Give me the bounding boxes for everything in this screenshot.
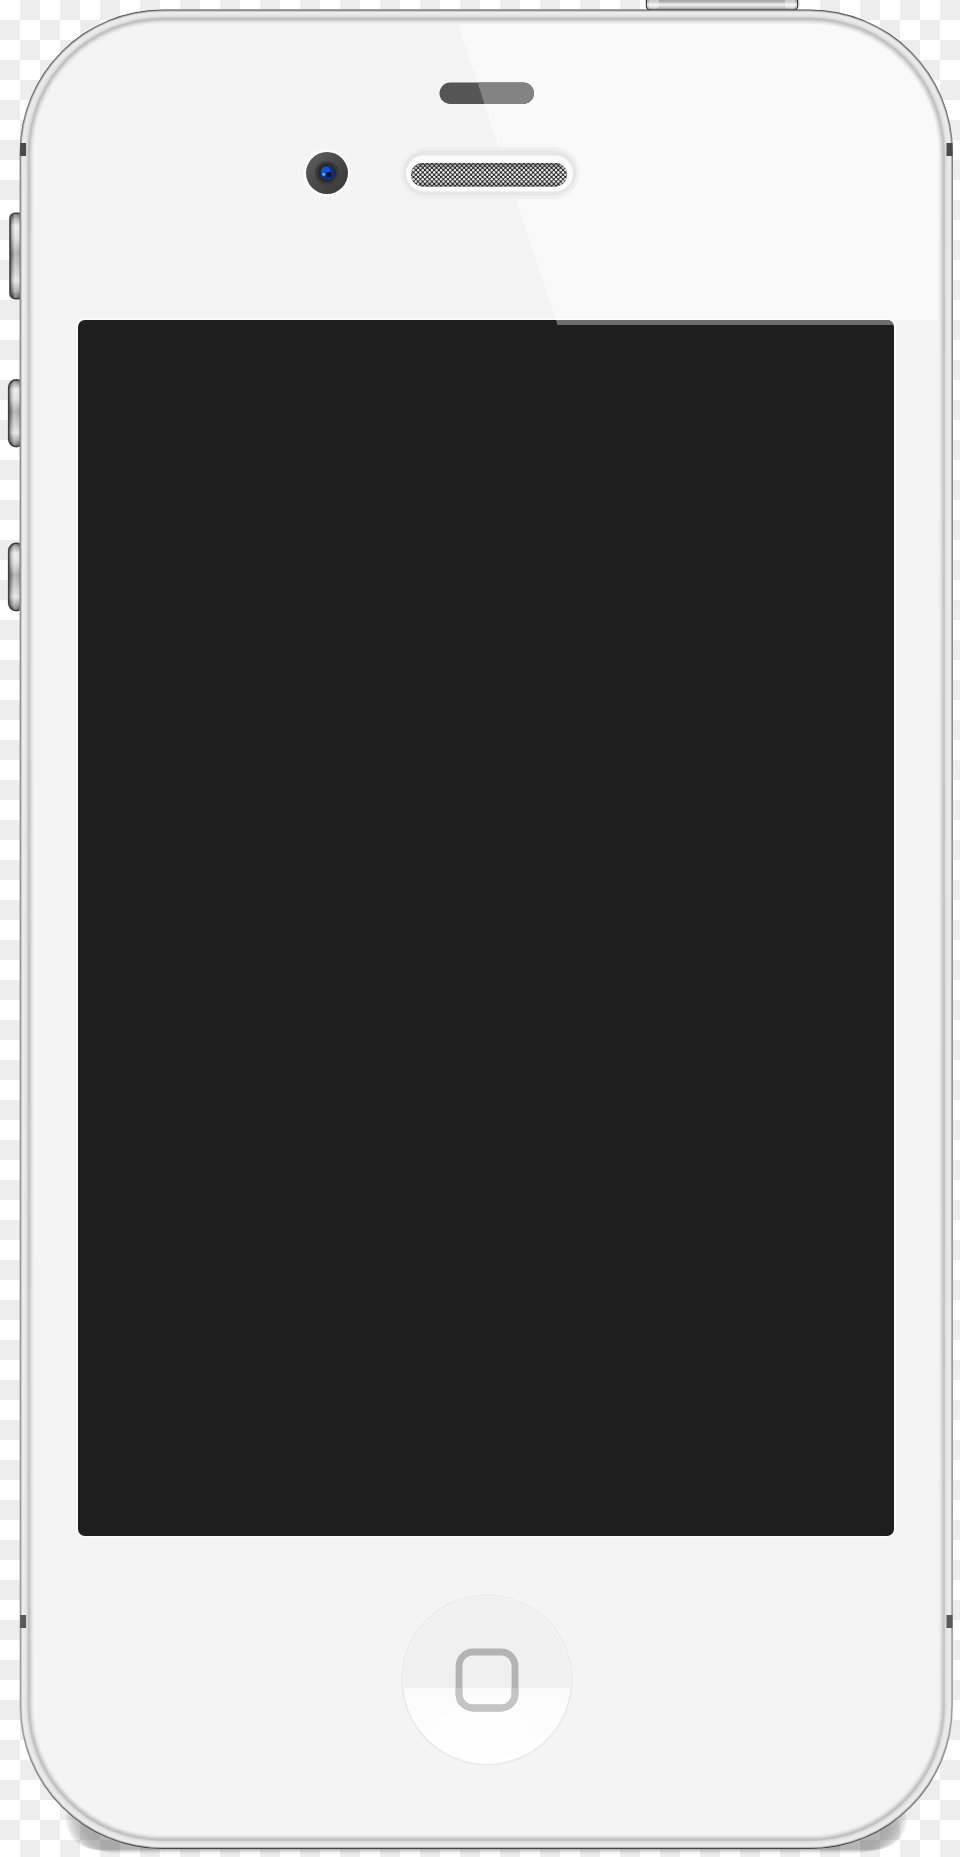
button[interactable]: Home button	[402, 1595, 572, 1765]
button[interactable]: Volume up	[4, 379, 28, 448]
button[interactable]: Volume down	[4, 542, 28, 612]
button[interactable]: Silent / ring switch	[4, 212, 28, 300]
button[interactable]: Power button	[645, 0, 799, 14]
button[interactable]: Phone screen	[78, 320, 894, 1536]
